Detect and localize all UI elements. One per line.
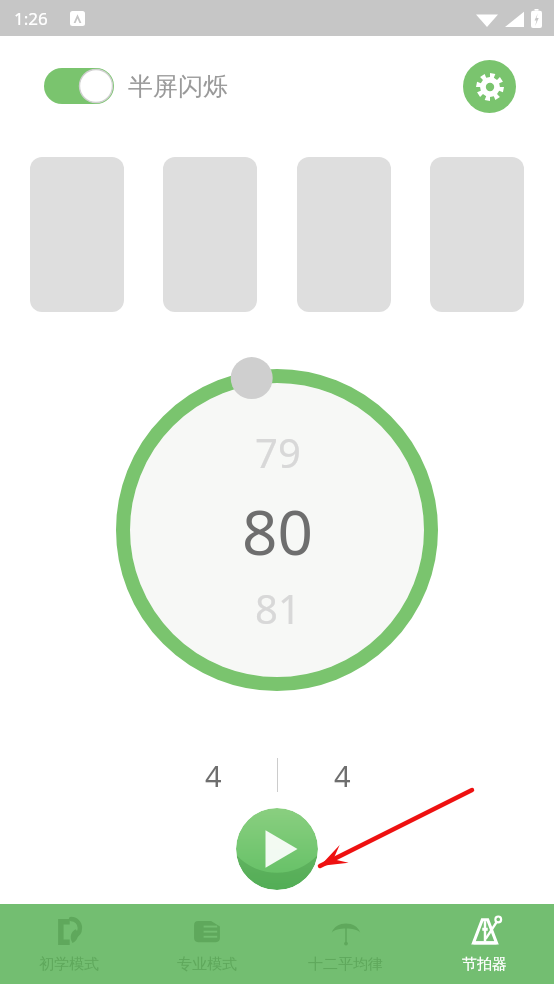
button[interactable]: Play: [236, 808, 318, 890]
button[interactable]: Settings: [463, 60, 516, 113]
staticText: 初学模式: [39, 955, 99, 974]
staticText: 十二平均律: [308, 955, 383, 974]
staticText: 专业模式: [177, 955, 237, 974]
button[interactable]: 十二平均律: [276, 904, 415, 984]
staticText: 81: [255, 581, 301, 635]
staticText: 节拍器: [462, 955, 507, 974]
button[interactable]: 半屏闪烁: [44, 68, 228, 104]
staticText: 半屏闪烁: [128, 71, 228, 102]
staticText: 4: [334, 756, 351, 795]
staticText: 79: [255, 425, 301, 479]
staticText: 4: [205, 756, 222, 795]
button[interactable]: 节拍器: [415, 904, 554, 984]
button[interactable]: Tempo dial: [101, 354, 453, 706]
button[interactable]: 4: [181, 752, 245, 798]
staticText: 80: [242, 489, 313, 573]
button[interactable]: 4: [310, 752, 374, 798]
button[interactable]: 专业模式: [138, 904, 276, 984]
button[interactable]: 初学模式: [0, 904, 138, 984]
staticText: 1:26: [14, 7, 48, 30]
